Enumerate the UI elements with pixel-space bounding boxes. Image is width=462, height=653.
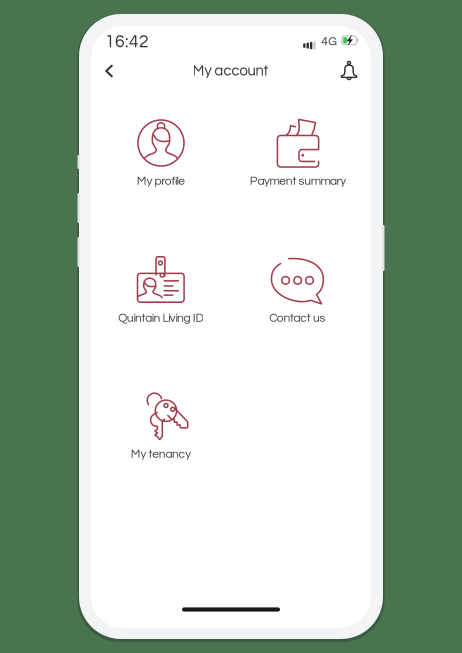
staticText: Quintain Living ID [118,312,203,324]
button[interactable]: Notifications [332,54,366,88]
button[interactable]: Back [92,54,126,88]
staticText: Payment summary [250,175,346,187]
staticText: 4G [321,35,337,48]
staticText: Contact us [269,312,326,324]
staticText: My tenancy [131,448,191,460]
staticText: 16:42 [105,33,149,51]
staticText: My account [192,63,268,78]
button[interactable]: My profile [95,116,227,208]
button[interactable]: Contact us [231,253,363,345]
staticText: My profile [137,175,185,187]
button[interactable]: My tenancy [95,389,227,481]
button[interactable]: Quintain Living ID [95,253,227,345]
button[interactable]: Payment summary [232,116,364,208]
